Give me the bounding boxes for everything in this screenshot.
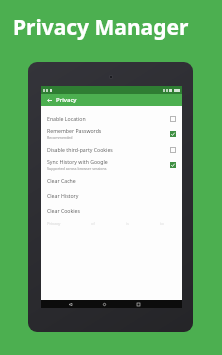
button[interactable]: Clear Cookies xyxy=(41,203,182,218)
staticText: to xyxy=(160,221,164,226)
button[interactable]: Clear Cache xyxy=(41,173,182,188)
button[interactable]: Unchecked xyxy=(168,114,177,123)
staticText: Recommended xyxy=(47,135,73,140)
button[interactable]: Remember Passwords xyxy=(41,125,182,142)
staticText: Clear Cookies xyxy=(47,207,81,214)
staticText: Disable third-party Cookies xyxy=(47,146,113,153)
staticText: Privacy xyxy=(56,96,77,104)
button[interactable]: Back xyxy=(65,300,75,308)
staticText: of xyxy=(91,221,95,226)
button[interactable]: Home xyxy=(99,300,109,308)
staticText: Privacy xyxy=(47,221,61,226)
button[interactable]: Recent apps xyxy=(133,300,143,308)
button[interactable]: Back xyxy=(45,96,53,104)
button[interactable]: Clear History xyxy=(41,188,182,203)
button[interactable]: Unchecked xyxy=(168,145,177,154)
staticText: Privacy Manager xyxy=(13,13,189,42)
button[interactable]: Enable Location xyxy=(41,111,182,125)
staticText: Sync History with Google xyxy=(47,158,108,165)
staticText: is xyxy=(126,221,129,226)
staticText: Enable Location xyxy=(47,115,86,122)
button[interactable]: Checked xyxy=(168,129,177,138)
staticText: Clear History xyxy=(47,192,79,199)
staticText: Supported across browser sessions xyxy=(47,166,107,171)
staticText: Clear Cache xyxy=(47,177,76,184)
button[interactable]: Checked xyxy=(168,160,177,169)
button[interactable]: Disable third-party Cookies xyxy=(41,142,182,156)
staticText: Remember Passwords xyxy=(47,127,102,134)
button[interactable]: Sync History with Google xyxy=(41,156,182,173)
